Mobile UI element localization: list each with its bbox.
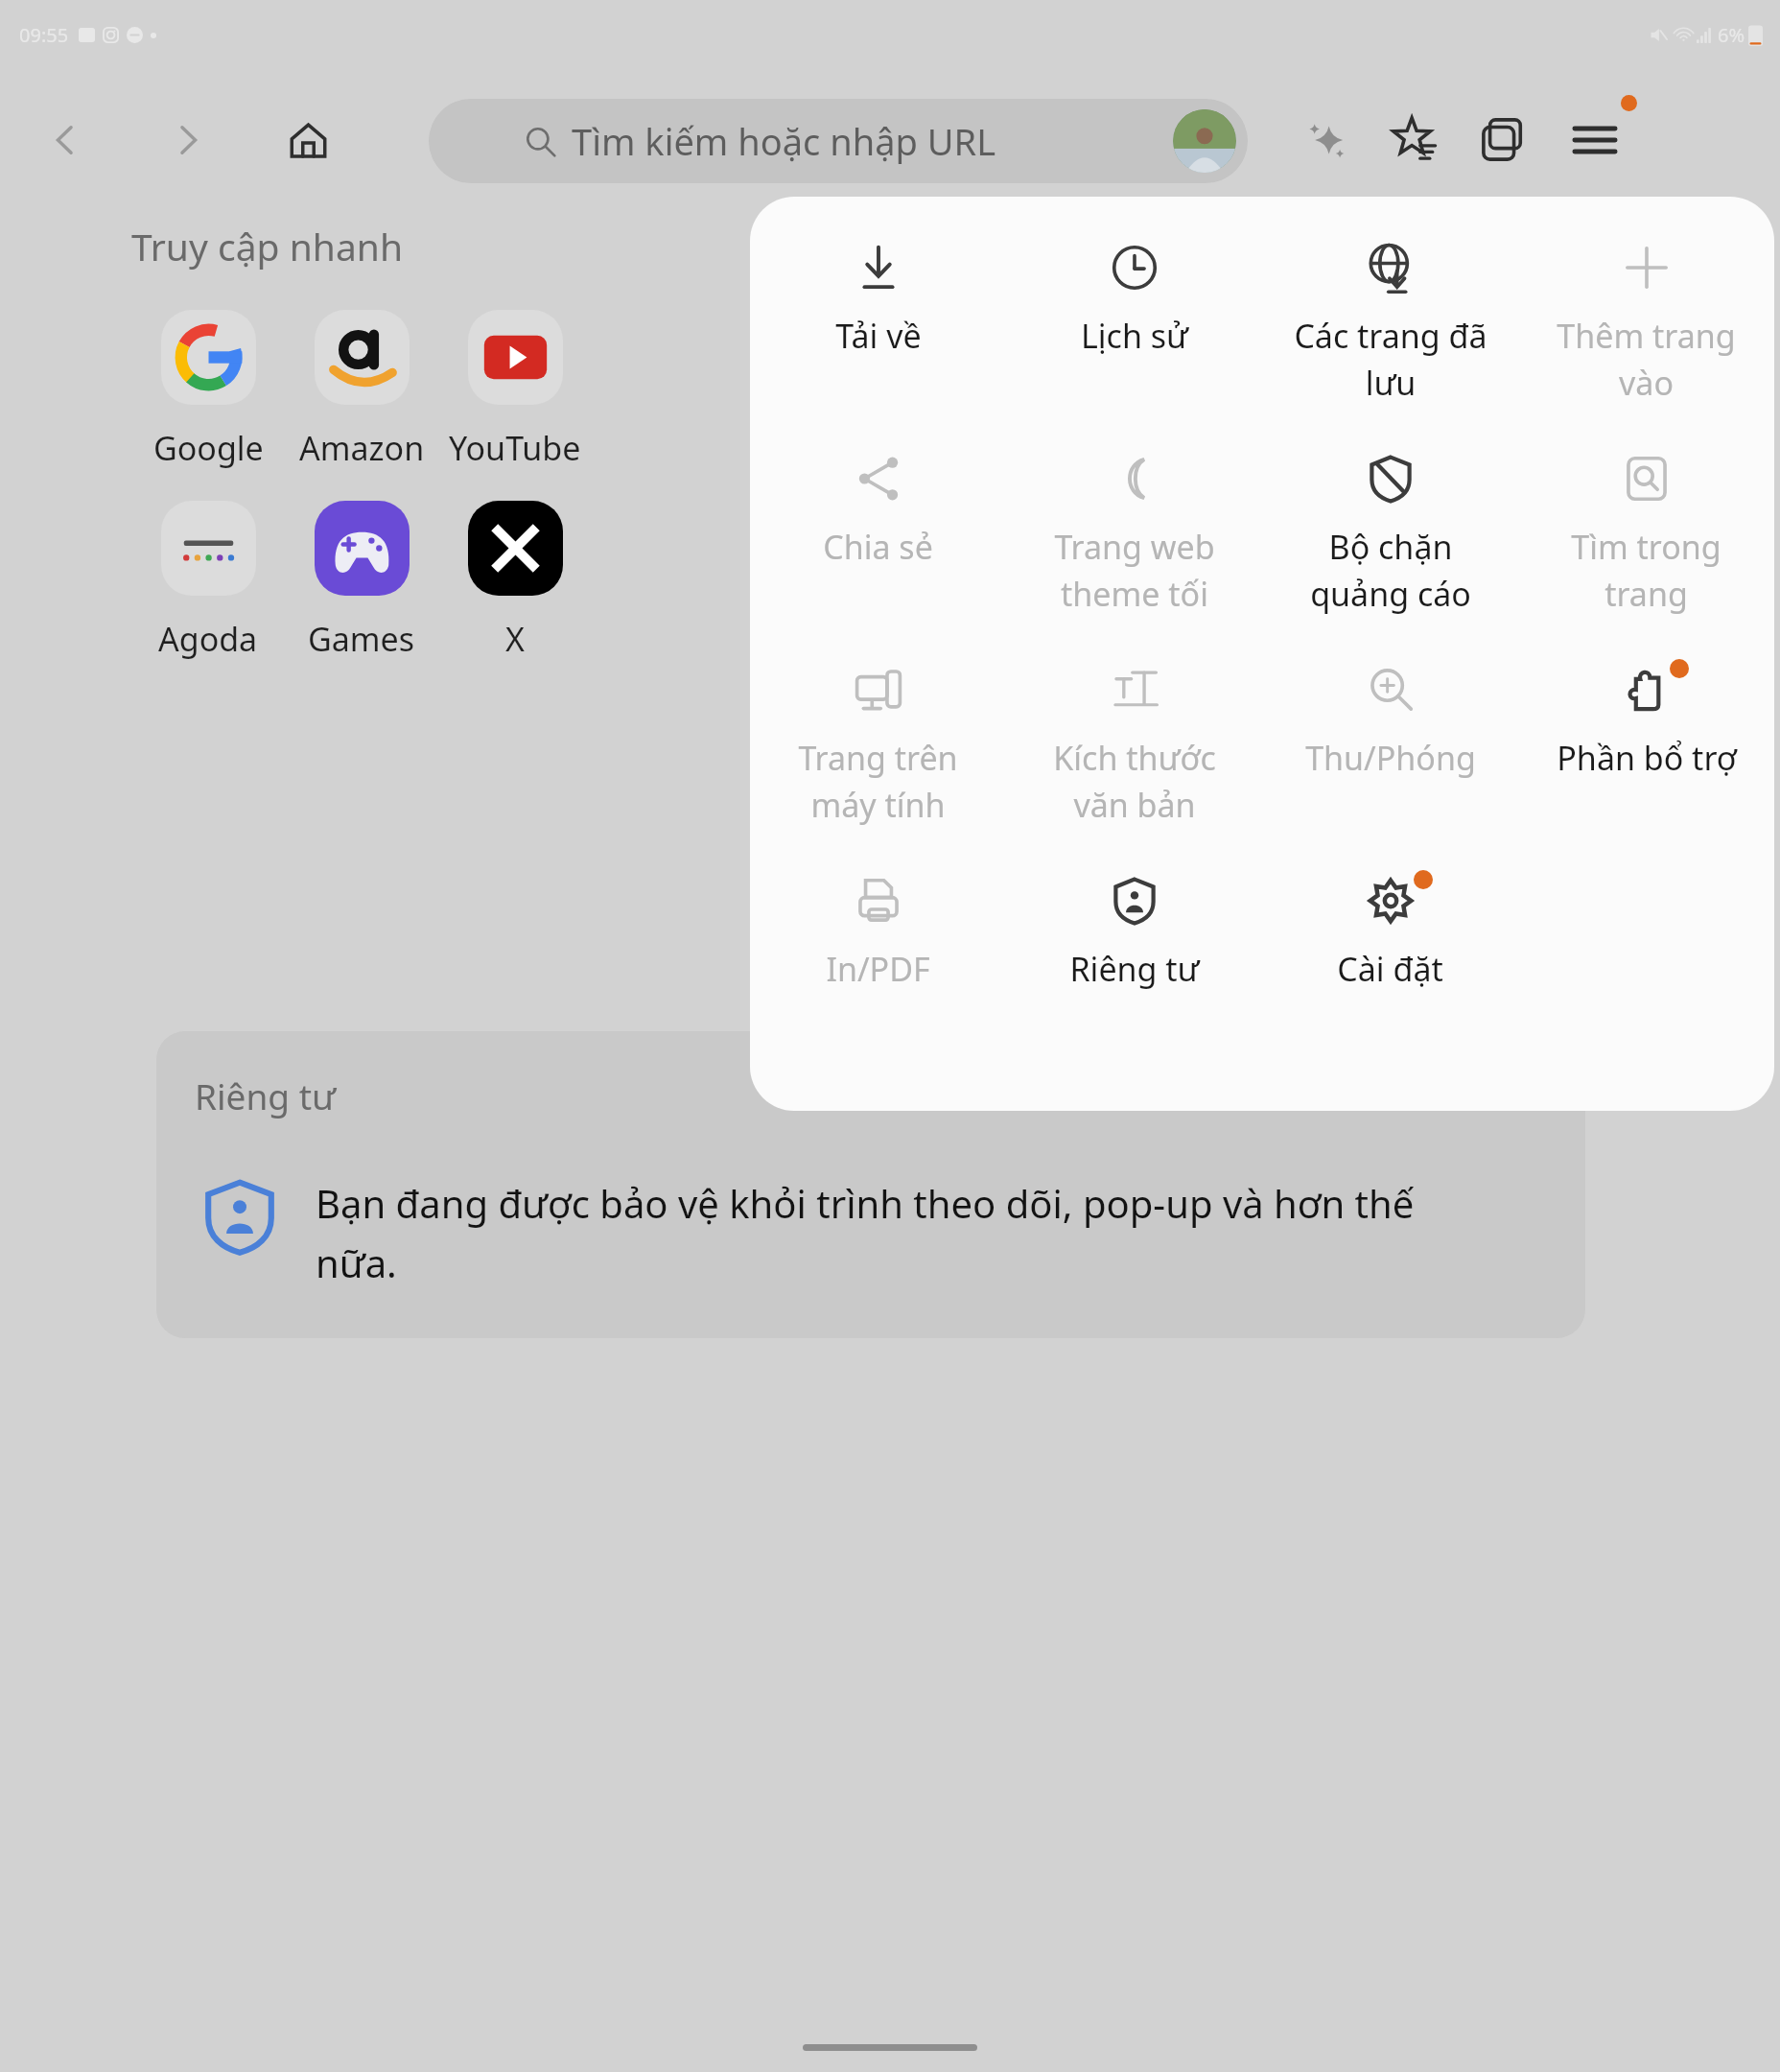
button[interactable]: Riêng tư: [156, 1031, 1585, 1338]
button[interactable]: Tải về: [750, 212, 1006, 423]
staticText: Thêm trang vào: [1557, 314, 1736, 405]
button[interactable]: Cài đặt: [1262, 845, 1518, 1056]
staticText: Tải về: [835, 314, 922, 358]
button[interactable]: Riêng tư: [1006, 845, 1262, 1056]
button[interactable]: Tìm kiếm hoặc nhập URL: [429, 99, 1248, 183]
button[interactable]: Tabs: [1467, 104, 1540, 177]
staticText: Các trang đã lưu: [1294, 314, 1487, 405]
staticText: Google: [153, 426, 264, 470]
staticText: Truy cập nhanh: [131, 221, 403, 271]
button[interactable]: Kích thước văn bản: [1006, 634, 1262, 845]
button[interactable]: Thu/Phóng: [1262, 634, 1518, 845]
button[interactable]: X: [438, 501, 592, 661]
button[interactable]: Tìm trong trang: [1518, 423, 1774, 634]
button[interactable]: Menu: [1558, 104, 1631, 177]
staticText: Thu/Phóng: [1305, 736, 1476, 780]
staticText: Trang trên máy tính: [798, 736, 958, 827]
button[interactable]: Agoda: [131, 501, 285, 661]
button[interactable]: Games: [285, 501, 438, 661]
staticText: Kích thước văn bản: [1053, 736, 1216, 827]
button[interactable]: Trang trên máy tính: [750, 634, 1006, 845]
staticText: Tìm trong trang: [1571, 525, 1721, 616]
button[interactable]: Forward: [152, 104, 224, 177]
button[interactable]: Bộ chặn quảng cáo: [1262, 423, 1518, 634]
staticText: Lịch sử: [1081, 314, 1188, 358]
button[interactable]: Amazon: [285, 310, 438, 470]
button[interactable]: Các trang đã lưu: [1262, 212, 1518, 423]
staticText: Chia sẻ: [823, 525, 933, 569]
button[interactable]: Assistant: [1290, 104, 1363, 177]
button[interactable]: Home: [271, 104, 344, 177]
staticText: Riêng tư: [195, 1071, 336, 1119]
staticText: Agoda: [158, 617, 258, 661]
staticText: 09:55: [19, 22, 69, 48]
staticText: YouTube: [449, 426, 581, 470]
button[interactable]: Bookmarks: [1378, 104, 1451, 177]
staticText: X: [505, 617, 525, 661]
staticText: In/PDF: [826, 947, 930, 991]
button[interactable]: Google: [131, 310, 285, 470]
staticText: Cài đặt: [1337, 947, 1443, 991]
staticText: Amazon: [299, 426, 425, 470]
staticText: Games: [308, 617, 415, 661]
button[interactable]: Trang web theme tối: [1006, 423, 1262, 634]
button[interactable]: YouTube: [438, 310, 592, 470]
button[interactable]: Phần bổ trợ: [1518, 634, 1774, 845]
staticText: Riêng tư: [1069, 947, 1200, 991]
button[interactable]: Back: [29, 104, 102, 177]
staticText: Tìm kiếm hoặc nhập URL: [572, 116, 996, 166]
staticText: Bộ chặn quảng cáo: [1310, 525, 1471, 616]
button[interactable]: In/PDF: [750, 845, 1006, 1056]
staticText: 6%: [1718, 22, 1745, 48]
button[interactable]: Profile: [1173, 109, 1236, 173]
button[interactable]: Chia sẻ: [750, 423, 1006, 634]
button[interactable]: Thêm trang vào: [1518, 212, 1774, 423]
button[interactable]: Lịch sử: [1006, 212, 1262, 423]
staticText: Phần bổ trợ: [1557, 736, 1737, 780]
staticText: Trang web theme tối: [1054, 525, 1215, 616]
staticText: Bạn đang được bảo vệ khỏi trình theo dõi…: [316, 1177, 1495, 1288]
